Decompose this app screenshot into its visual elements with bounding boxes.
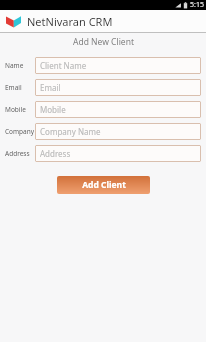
staticText: Client Name bbox=[40, 60, 87, 71]
staticText: Add Client bbox=[82, 179, 126, 191]
staticText: Add New Client bbox=[73, 36, 134, 48]
staticText: Address bbox=[40, 148, 71, 159]
staticText: Name bbox=[5, 61, 24, 70]
staticText: Mobile bbox=[40, 104, 66, 115]
staticText: 5:15 bbox=[190, 0, 204, 10]
button[interactable]: Client Name bbox=[35, 57, 201, 74]
staticText: NetNivaran CRM bbox=[27, 14, 113, 29]
button[interactable]: Add Client bbox=[57, 176, 150, 194]
button[interactable]: Email bbox=[35, 79, 201, 96]
button[interactable]: Company Name bbox=[35, 123, 201, 140]
staticText: Company bbox=[5, 127, 35, 136]
staticText: Company Name bbox=[40, 126, 101, 137]
staticText: Email bbox=[5, 83, 22, 92]
staticText: Email bbox=[40, 82, 61, 93]
button[interactable]: Mobile bbox=[35, 101, 201, 118]
staticText: Mobile bbox=[5, 105, 26, 114]
button[interactable]: Address bbox=[35, 145, 201, 162]
staticText: Address bbox=[5, 149, 30, 158]
